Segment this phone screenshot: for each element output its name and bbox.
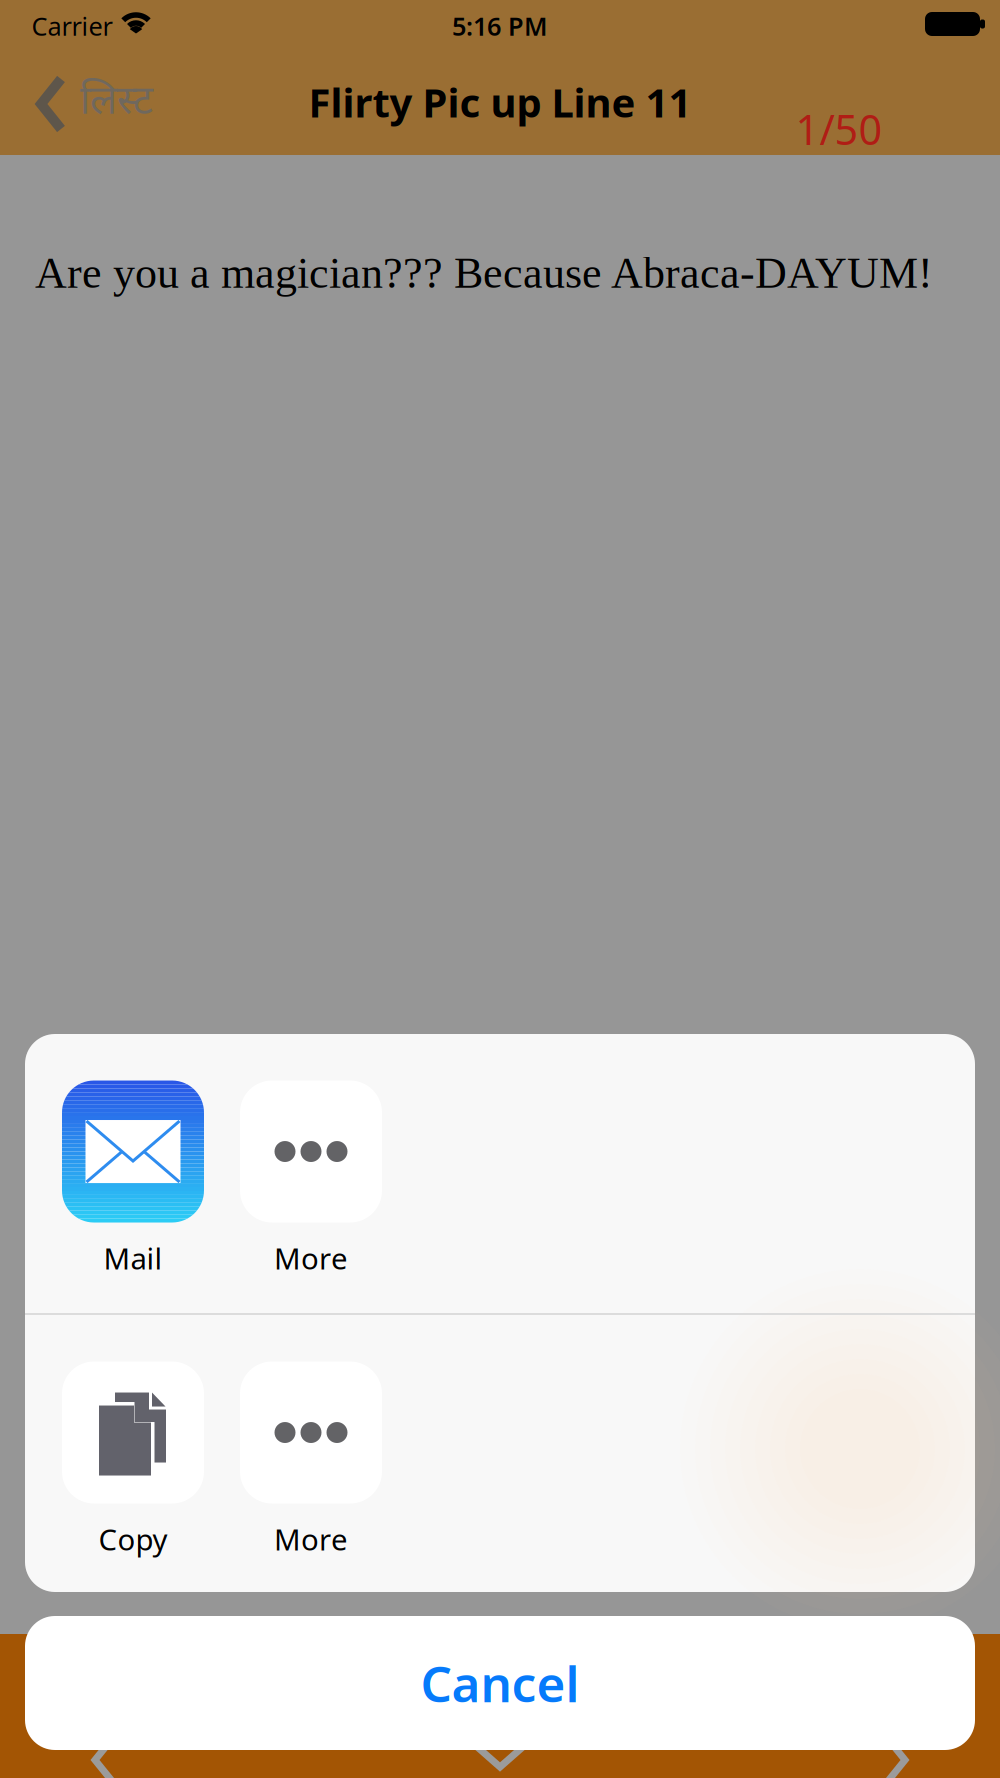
button[interactable]: Back <box>37 77 153 131</box>
staticText: 1/50 <box>795 102 882 156</box>
staticText: Flirty Pic up Line 11 <box>308 75 691 128</box>
staticText: More <box>274 1238 348 1277</box>
staticText: Mail <box>103 1238 162 1277</box>
staticText: More <box>274 1519 348 1558</box>
button[interactable]: Previous <box>92 1732 120 1778</box>
button[interactable]: Hide <box>473 1743 527 1769</box>
staticText: 5:16 PM <box>452 9 548 43</box>
button[interactable]: Next <box>880 1732 908 1778</box>
staticText: Cancel <box>420 1650 579 1716</box>
staticText: लिस्ट <box>80 78 153 130</box>
button[interactable]: Cancel <box>25 1616 975 1750</box>
staticText: Copy <box>98 1519 167 1558</box>
button[interactable]: Copy <box>62 1361 204 1558</box>
button[interactable]: More <box>240 1361 382 1558</box>
staticText: Are you a magician??? Because Abraca-DAY… <box>35 249 933 297</box>
button[interactable]: Mail <box>62 1080 204 1277</box>
staticText: Carrier <box>31 9 112 43</box>
button[interactable]: More <box>240 1080 382 1277</box>
